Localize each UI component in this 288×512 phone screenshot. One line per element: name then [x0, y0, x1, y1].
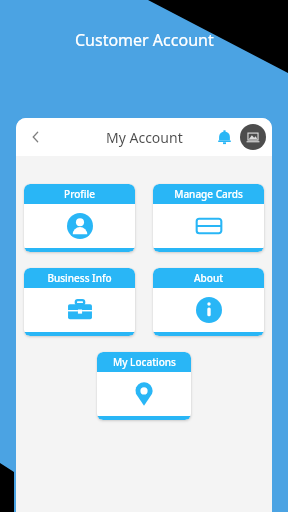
- staticText: Customer Account: [75, 29, 214, 51]
- staticText: Profile: [64, 187, 95, 201]
- staticText: Business Info: [47, 271, 112, 285]
- button[interactable]: Notifications: [212, 125, 236, 149]
- button[interactable]: Back: [22, 123, 50, 151]
- button[interactable]: Manage Cards: [153, 184, 264, 252]
- staticText: About: [194, 271, 223, 285]
- staticText: My Account: [106, 128, 183, 147]
- staticText: My Locations: [113, 355, 176, 369]
- button[interactable]: Profile: [24, 184, 135, 252]
- staticText: Manage Cards: [174, 187, 243, 201]
- button[interactable]: My Locations: [97, 352, 191, 420]
- button[interactable]: Business Info: [24, 268, 135, 336]
- button[interactable]: About: [153, 268, 264, 336]
- button[interactable]: Profile picture: [240, 124, 266, 150]
